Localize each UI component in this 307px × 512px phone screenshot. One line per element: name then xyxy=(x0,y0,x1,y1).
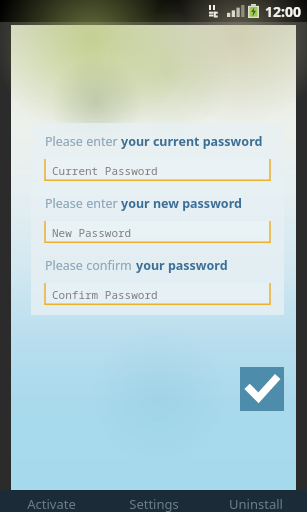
staticText: your password xyxy=(136,257,228,274)
staticText: Current Password xyxy=(52,163,158,178)
button[interactable]: Confirm Password xyxy=(45,283,270,305)
button[interactable]: Current Password xyxy=(45,159,270,181)
staticText: Settings xyxy=(129,495,179,512)
staticText: Please enter xyxy=(45,195,121,212)
staticText: Confirm Password xyxy=(52,287,158,302)
staticText: your new password xyxy=(121,195,242,212)
button[interactable]: New Password xyxy=(45,221,270,243)
button[interactable]: Confirm xyxy=(240,367,284,411)
button[interactable]: Activate xyxy=(0,493,103,512)
staticText: Uninstall xyxy=(229,495,283,512)
staticText: 12:00 xyxy=(265,2,301,21)
staticText: Please confirm xyxy=(45,257,136,274)
staticText: your current password xyxy=(121,133,263,150)
staticText: Please enter xyxy=(45,133,121,150)
button[interactable]: Uninstall xyxy=(205,493,307,512)
staticText: Activate xyxy=(27,495,76,512)
button[interactable]: Settings xyxy=(103,493,205,512)
staticText: New Password xyxy=(52,225,132,240)
